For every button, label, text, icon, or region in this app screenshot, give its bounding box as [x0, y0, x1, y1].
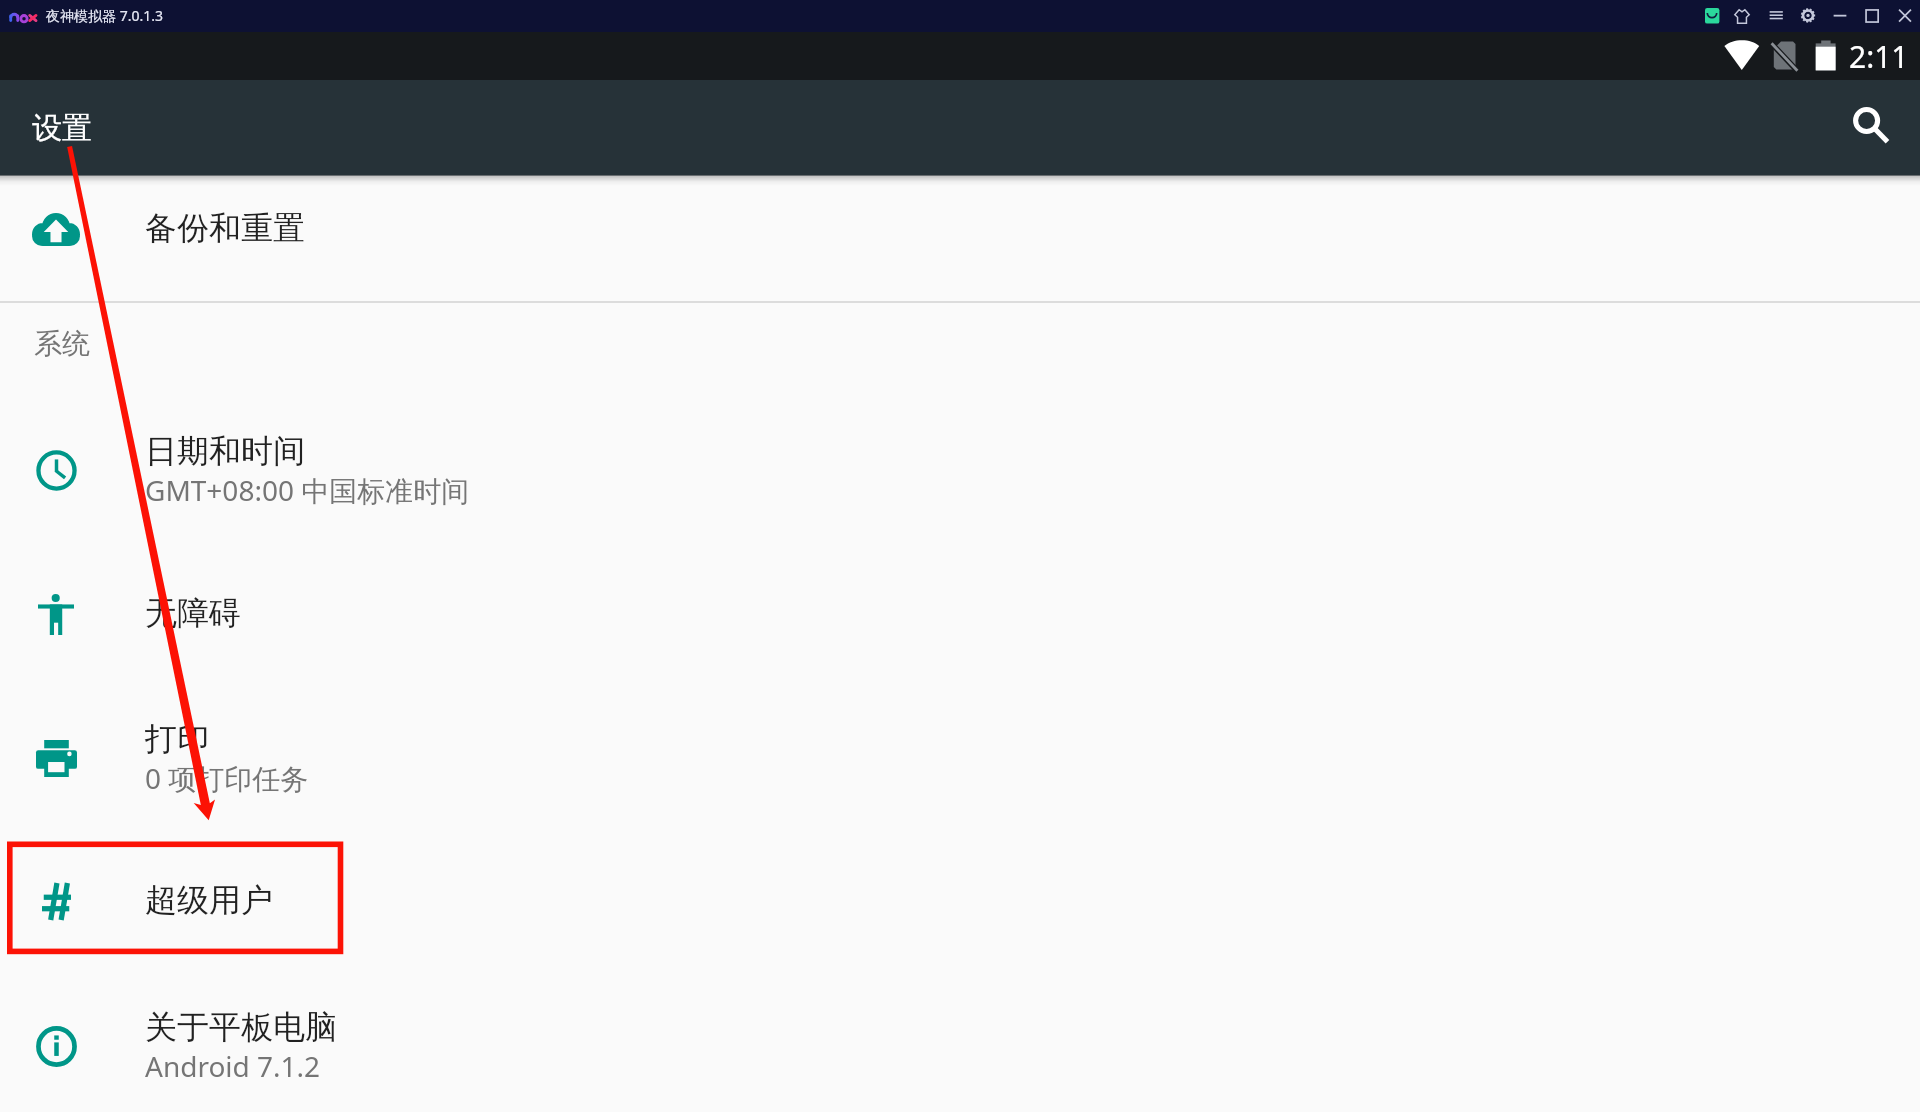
staticText: 备份和重置 [145, 208, 305, 248]
staticText: 夜神模拟器 7.0.1.3 [46, 6, 163, 25]
staticText: 设置 [32, 109, 92, 147]
button[interactable]: Close [1894, 4, 1916, 26]
staticText: Android 7.1.2 [145, 1047, 321, 1085]
staticText: 2:11 [1849, 36, 1909, 77]
staticText: 无障碍 [145, 593, 241, 633]
button[interactable]: Menu [1765, 4, 1787, 26]
button[interactable]: 无障碍 [0, 542, 1920, 686]
staticText: 系统 [34, 326, 90, 361]
staticText: 0 项打印任务 [145, 759, 309, 797]
staticText: 超级用户 [145, 880, 273, 920]
staticText: GMT+08:00 中国标准时间 [145, 471, 470, 509]
button[interactable]: Settings [1797, 4, 1819, 26]
staticText: 关于平板电脑 [145, 1007, 337, 1047]
button[interactable]: 日期和时间 [0, 398, 1920, 542]
button[interactable]: 超级用户 [0, 829, 1920, 973]
button[interactable]: Minimize [1829, 4, 1851, 26]
button[interactable]: 关于平板电脑 [0, 974, 1920, 1112]
button[interactable]: App store [1699, 4, 1721, 26]
staticText: 日期和时间 [145, 431, 305, 471]
button[interactable]: Maximize [1861, 4, 1883, 26]
button[interactable]: Search [1845, 107, 1903, 165]
button[interactable]: 备份和重置 [0, 157, 1920, 301]
button[interactable]: 打印 [0, 686, 1920, 830]
button[interactable]: Skin [1730, 4, 1754, 28]
staticText: 打印 [145, 719, 209, 759]
